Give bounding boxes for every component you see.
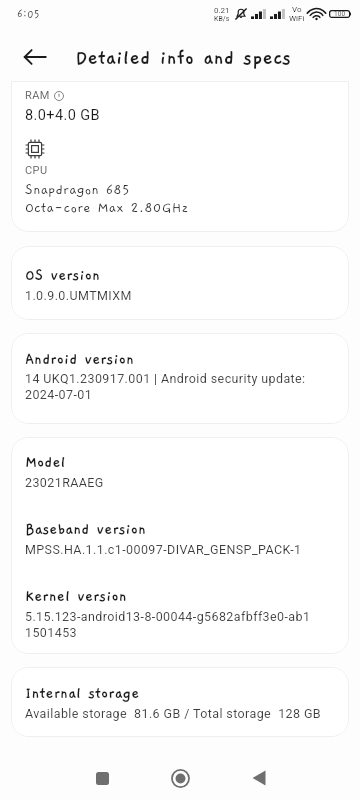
staticText: 6:05 (17, 8, 40, 20)
button[interactable]: Back (13, 35, 57, 79)
button[interactable]: Home (156, 754, 204, 800)
button[interactable]: RAM (11, 81, 349, 232)
staticText: 100 (334, 10, 346, 18)
button[interactable]: OS version (11, 246, 349, 320)
staticText: Snapdragon 685 (25, 182, 130, 197)
staticText: CPU (25, 164, 48, 177)
staticText: MPSS.HA.1.1.c1-00097-DIVAR_GENSP_PACK-1 (25, 542, 302, 557)
staticText: 1.0.9.0.UMTMIXM (25, 288, 132, 303)
staticText: Model (25, 454, 66, 471)
staticText: WiFi (289, 14, 305, 23)
staticText: 5.15.123-android13-8-00044-g5682afbff3e0… (25, 609, 311, 641)
button[interactable]: Recents (78, 754, 126, 800)
staticText: Baseband version (25, 521, 147, 538)
staticText: 23021RAAEG (25, 475, 104, 490)
staticText: 8.0+4.0 GB (25, 107, 100, 124)
staticText: Kernel version (25, 588, 127, 605)
button[interactable]: Model (11, 437, 349, 654)
staticText: Vo (292, 5, 302, 14)
button[interactable]: Android version (11, 333, 349, 424)
staticText: 0.21 (214, 6, 230, 15)
button[interactable]: Back (234, 754, 282, 800)
button[interactable]: Internal storage (11, 667, 349, 737)
staticText: KB/s (214, 15, 230, 23)
staticText: 14 UKQ1.230917.001 | Android security up… (25, 371, 306, 403)
staticText: Internal storage (25, 685, 140, 702)
staticText: Android version (25, 351, 134, 368)
staticText: OS version (25, 267, 100, 284)
staticText: Detailed info and specs (75, 47, 292, 69)
staticText: RAM (25, 89, 50, 102)
staticText: Available storage 81.6 GB / Total storag… (25, 706, 322, 721)
staticText: Octa-core Max 2.80GHz (25, 200, 189, 215)
